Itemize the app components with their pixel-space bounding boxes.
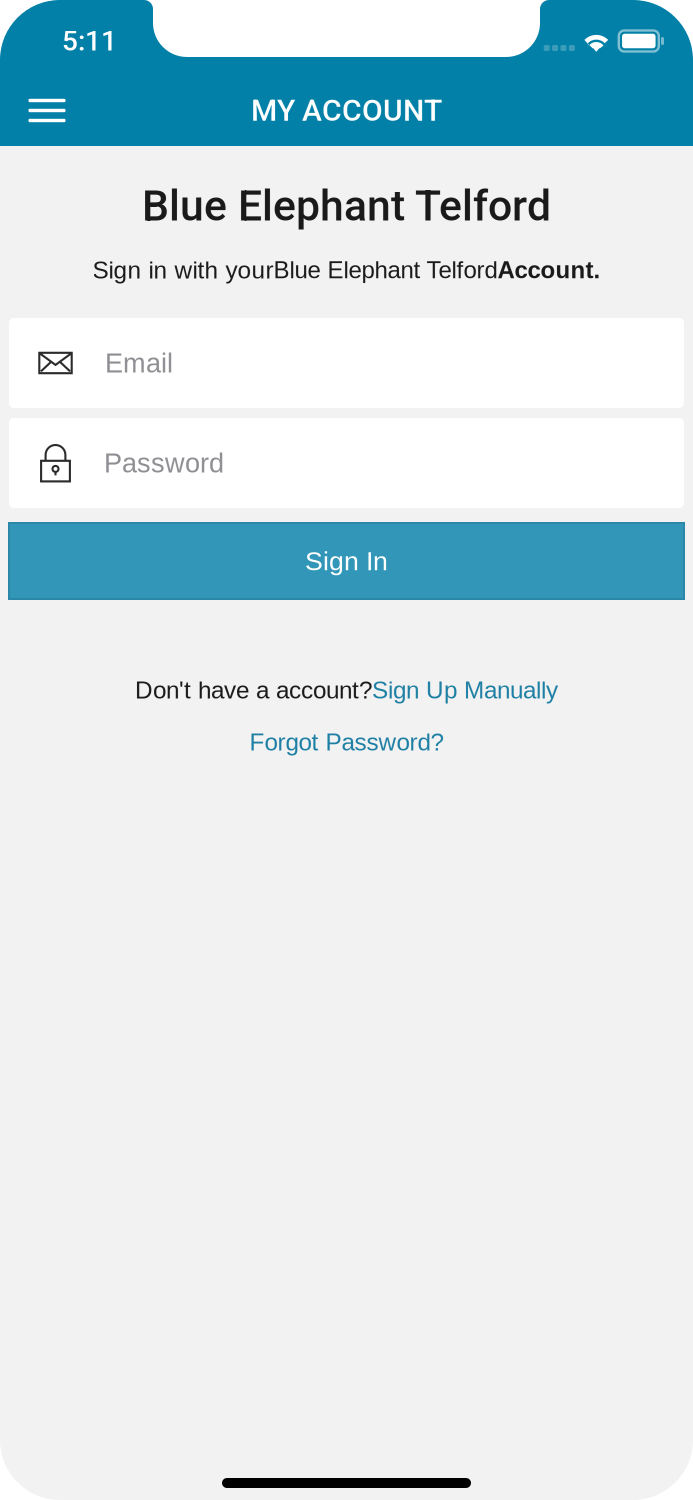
staticText: Email [105,348,173,378]
staticText: Sign in with your [92,256,273,284]
button[interactable]: Email [9,318,684,408]
staticText: Don't have a account? [135,676,372,703]
staticText: Password [104,448,224,478]
staticText: Forgot Password? [249,728,443,755]
button[interactable]: Menu [11,75,83,146]
staticText: Sign Up Manually [372,676,558,703]
staticText: Account. [497,257,600,283]
button[interactable]: Sign Up Manually [372,676,558,703]
staticText: Blue Elephant Telford [142,181,551,231]
button[interactable]: Password [9,418,684,508]
button[interactable]: Sign In [9,523,684,599]
staticText: Sign In [305,546,388,576]
staticText: MY ACCOUNT [251,93,442,128]
staticText: 5:11 [62,25,117,57]
button[interactable]: Forgot Password? [249,722,443,762]
staticText: Blue Elephant Telford [273,257,497,283]
